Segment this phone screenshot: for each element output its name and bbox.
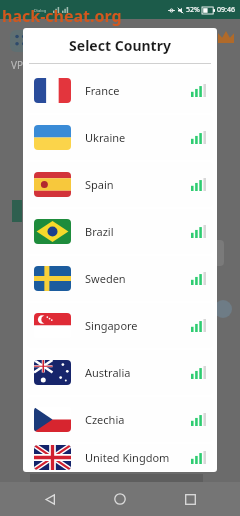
- staticText: 09:46: [217, 5, 235, 15]
- button[interactable]: Brazil: [27, 209, 213, 254]
- staticText: Czechia: [85, 412, 125, 427]
- staticText: United Kingdom: [85, 450, 170, 465]
- button[interactable]: Czechia: [27, 397, 213, 442]
- button[interactable]: Singapore: [27, 303, 213, 348]
- staticText: hack-cheat.org: [2, 5, 122, 27]
- staticText: Select Country: [23, 36, 217, 55]
- button[interactable]: United Kingdom: [27, 444, 213, 471]
- button[interactable]: Recents: [170, 482, 210, 516]
- staticText: Ukraine: [85, 130, 126, 145]
- button[interactable]: Back: [30, 482, 70, 516]
- staticText: 52%: [186, 5, 200, 15]
- staticText: VP: [11, 58, 24, 72]
- staticText: Dialog: [34, 8, 47, 13]
- staticText: Brazil: [85, 224, 114, 239]
- staticText: Singapore: [85, 318, 138, 333]
- staticText: Sweden: [85, 271, 126, 286]
- button[interactable]: Spain: [27, 162, 213, 207]
- button[interactable]: Home: [100, 482, 140, 516]
- staticText: Australia: [85, 365, 131, 380]
- staticText: Spain: [85, 177, 114, 192]
- button[interactable]: Sweden: [27, 256, 213, 301]
- staticText: France: [85, 83, 120, 98]
- button[interactable]: France: [27, 68, 213, 113]
- button[interactable]: Australia: [27, 350, 213, 395]
- button[interactable]: Ukraine: [27, 115, 213, 160]
